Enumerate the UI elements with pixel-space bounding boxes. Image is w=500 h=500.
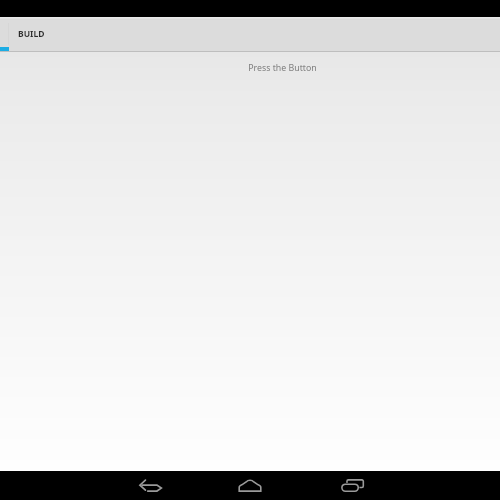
- button[interactable]: Back: [129, 474, 171, 498]
- staticText: Press the Button: [248, 62, 317, 74]
- button[interactable]: BUILD: [0, 17, 500, 51]
- button[interactable]: Home: [230, 473, 270, 497]
- staticText: BUILD: [18, 28, 45, 40]
- button[interactable]: Recent apps: [332, 473, 372, 497]
